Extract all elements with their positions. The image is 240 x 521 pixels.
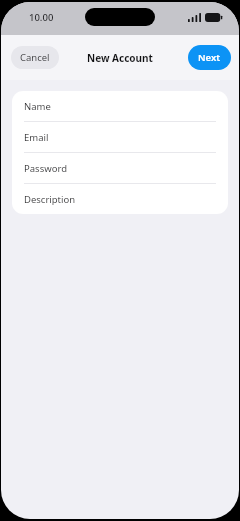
button[interactable]: Description (12, 184, 228, 214)
button[interactable]: Password (12, 153, 228, 183)
button[interactable]: Next (188, 45, 231, 70)
staticText: Next (198, 51, 221, 64)
other: Cellular signal (188, 13, 201, 22)
staticText: Password (24, 162, 67, 175)
button[interactable]: Email (12, 122, 228, 152)
button[interactable]: Name (12, 91, 228, 121)
staticText: Email (24, 131, 49, 144)
staticText: Name (24, 100, 51, 113)
other: Battery (205, 13, 223, 22)
staticText: New Account (87, 51, 153, 65)
staticText: Description (24, 193, 76, 206)
staticText: Cancel (20, 51, 50, 64)
staticText: 10.00 (29, 11, 54, 24)
button[interactable]: Cancel (11, 46, 59, 69)
